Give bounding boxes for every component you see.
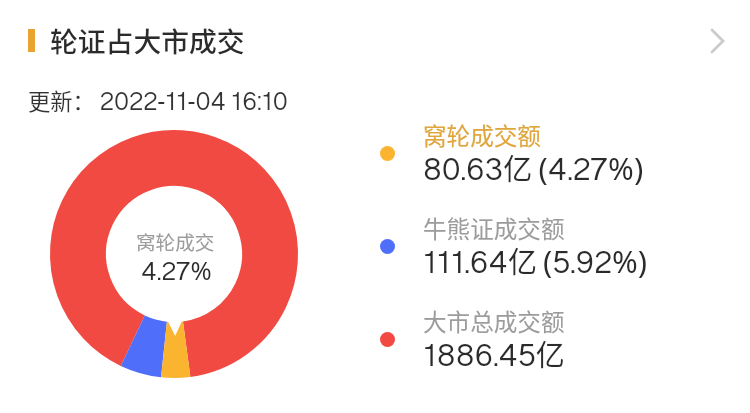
button[interactable]: 牛熊证成交额 (374, 215, 704, 297)
staticText: 牛熊证成交额 (423, 211, 565, 245)
staticText: 窝轮成交 (136, 227, 215, 255)
button[interactable]: View details (698, 18, 744, 64)
staticText: 111.64亿 (5.92%) (423, 239, 647, 282)
staticText: 更新： 2022-11-04 16:10 (28, 83, 288, 117)
staticText: 1886.45亿 (423, 332, 565, 375)
staticText: 大市总成交额 (423, 304, 565, 338)
staticText: 80.63亿 (4.27%) (423, 146, 644, 189)
staticText: 窝轮成交额 (423, 118, 541, 152)
button[interactable]: 窝轮成交额 (374, 122, 704, 204)
button[interactable]: 大市总成交额 (374, 308, 704, 390)
staticText: 轮证占大市成交 (50, 20, 245, 60)
staticText: 4.27% (141, 253, 212, 288)
